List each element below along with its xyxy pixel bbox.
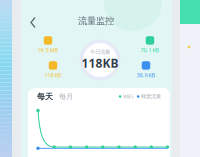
button[interactable]: 每月 [53,92,73,101]
staticText: 每月 [59,92,73,101]
staticText: WiFi [123,93,133,100]
staticText: 流量监控 [78,15,114,27]
staticText: 38.9 KB [136,71,155,79]
staticText: 118 KB [44,71,61,79]
button[interactable]: 每天 [37,91,53,102]
staticText: 每天 [37,91,53,102]
staticText: 70.1 KB [140,46,159,54]
staticText: 今日流量 [90,49,110,55]
staticText: 19.5 MB [37,46,58,54]
button[interactable]: Back [28,14,38,27]
staticText: 118KB [81,55,118,71]
staticText: 蜂窝流量 [141,93,161,100]
